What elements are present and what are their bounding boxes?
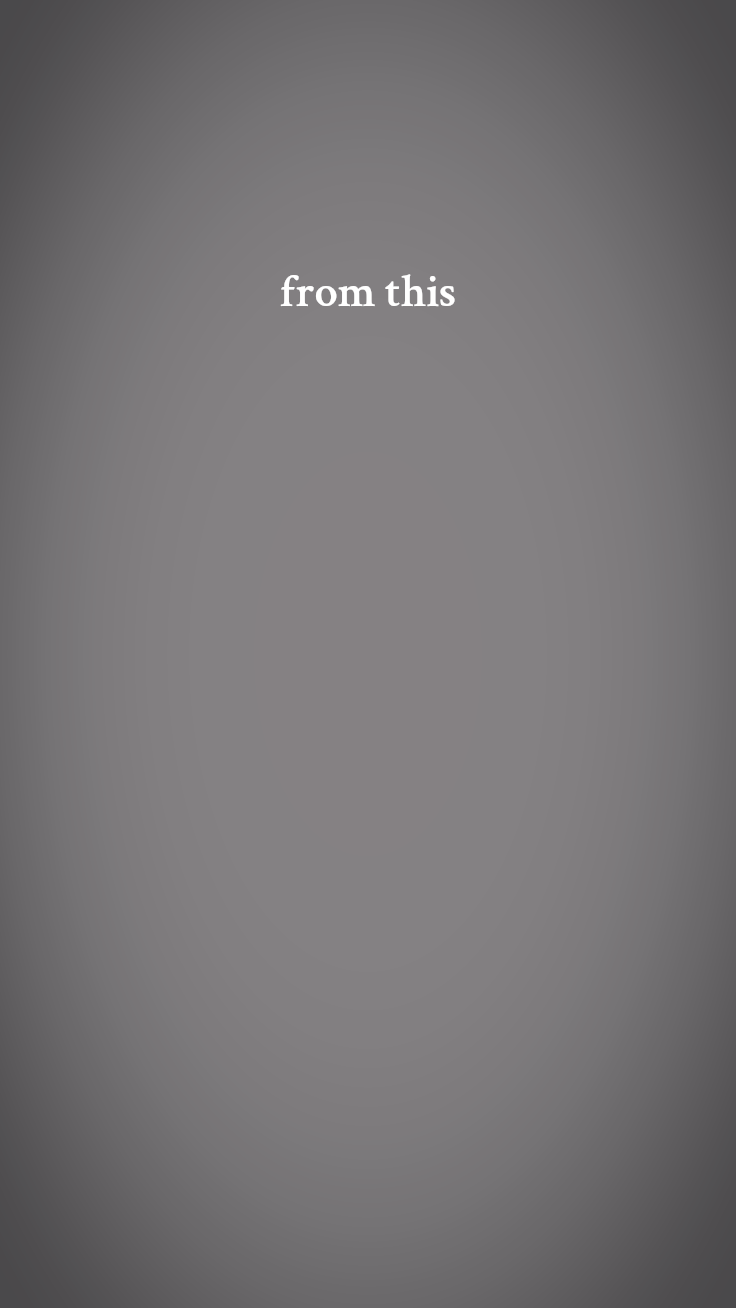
button[interactable]: from this [0,262,736,322]
